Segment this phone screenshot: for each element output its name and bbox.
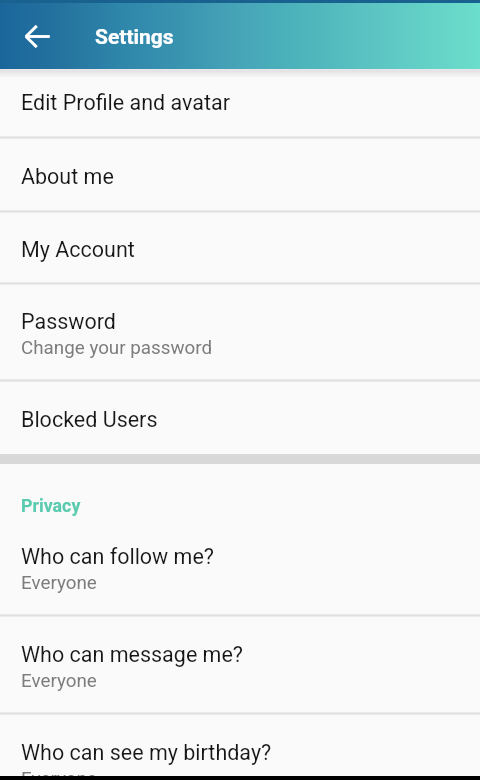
staticText: Edit Profile and avatar (21, 90, 231, 115)
button[interactable]: Password (0, 284, 480, 381)
staticText: Settings (95, 25, 174, 50)
staticText: Who can message me? (21, 642, 244, 667)
staticText: Everyone (21, 670, 97, 692)
staticText: My Account (21, 237, 135, 262)
staticText: Change your password (21, 337, 213, 359)
button[interactable]: Who can follow me? (0, 518, 480, 616)
button[interactable]: Blocked Users (0, 381, 480, 454)
button[interactable]: Back (13, 12, 61, 60)
staticText: About me (21, 164, 114, 189)
staticText: Who can follow me? (21, 544, 215, 569)
button[interactable]: My Account (0, 212, 480, 284)
button[interactable]: About me (0, 138, 480, 212)
button[interactable]: Who can message me? (0, 616, 480, 714)
button[interactable]: Who can see my birthday? (0, 714, 480, 780)
staticText: Who can see my birthday? (21, 740, 272, 765)
staticText: Blocked Users (21, 407, 158, 432)
button[interactable]: Edit Profile and avatar (0, 69, 480, 138)
staticText: Everyone (21, 572, 97, 594)
staticText: Privacy (21, 495, 81, 516)
staticText: Password (21, 309, 116, 334)
staticText: Everyone (21, 768, 97, 780)
